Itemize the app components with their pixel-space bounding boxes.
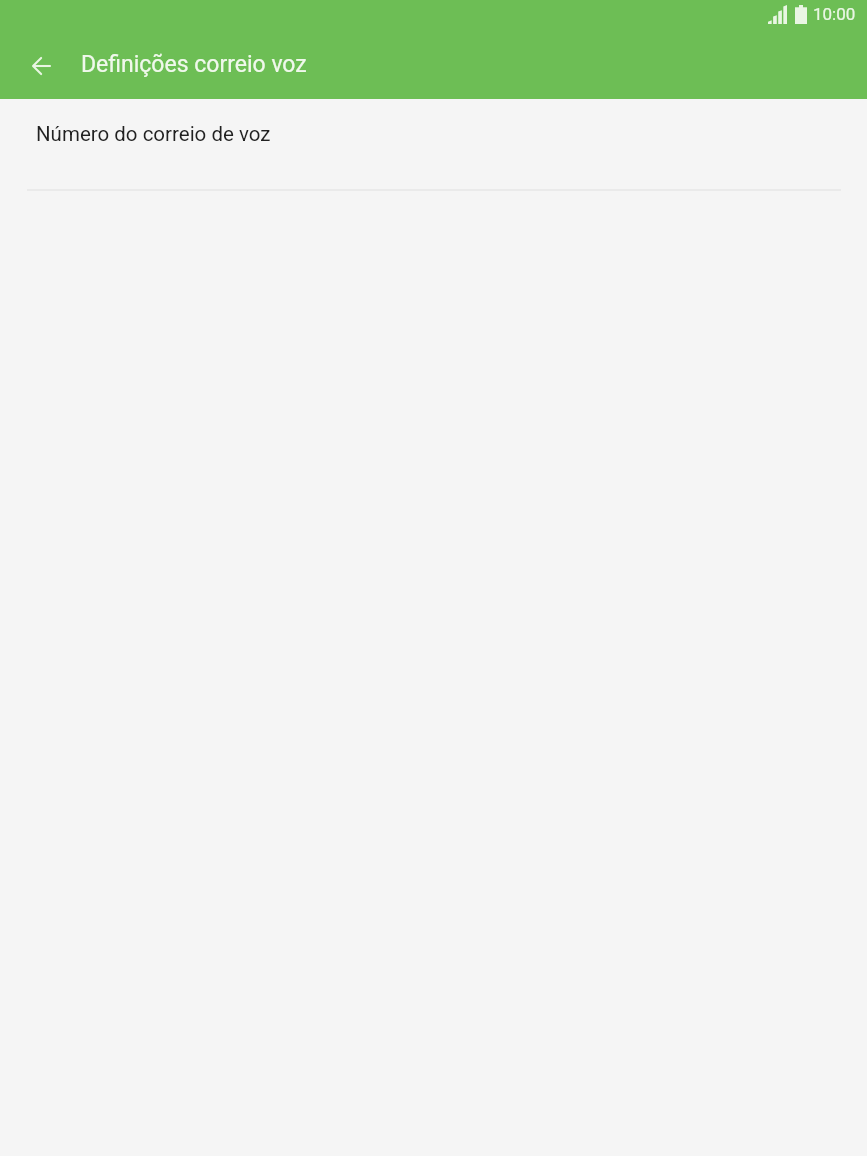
button[interactable]: Número do correio de voz — [0, 99, 867, 189]
staticText: Número do correio de voz — [36, 122, 271, 146]
button[interactable]: Back — [14, 37, 68, 91]
staticText: Definições correio voz — [81, 51, 307, 78]
staticText: 10:00 — [813, 4, 856, 24]
